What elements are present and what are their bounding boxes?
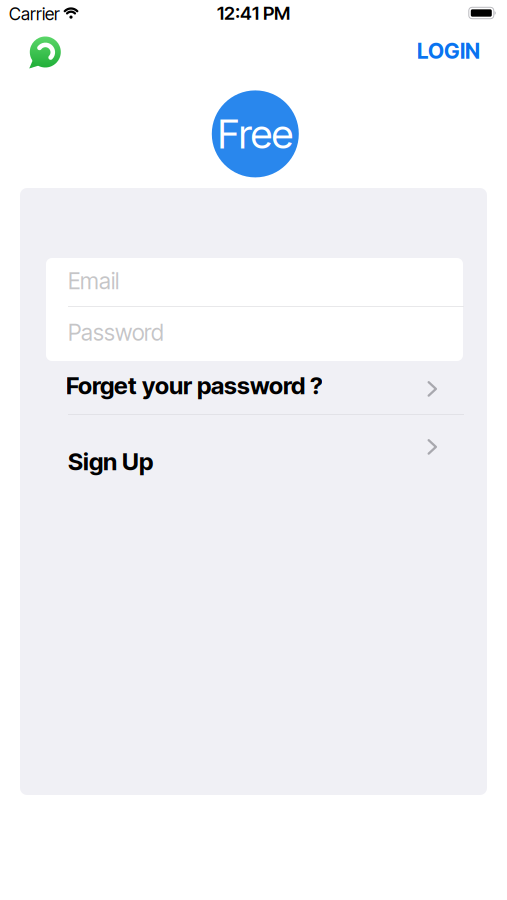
button[interactable]: Email xyxy=(68,257,464,305)
button[interactable]: Password xyxy=(68,308,464,357)
staticText: Carrier xyxy=(9,3,60,24)
staticText: Sign Up xyxy=(68,447,153,476)
button[interactable]: WhatsApp xyxy=(26,34,62,70)
button[interactable]: Forget your password ? xyxy=(66,369,437,403)
button[interactable]: Sign Up xyxy=(68,430,437,486)
staticText: Free xyxy=(218,110,293,158)
staticText: Password xyxy=(68,319,164,346)
staticText: Email xyxy=(68,267,119,295)
staticText: Forget your password ? xyxy=(66,371,323,400)
staticText: 12:41 PM xyxy=(217,2,290,24)
staticText: LOGIN xyxy=(417,38,480,64)
button[interactable]: LOGIN xyxy=(417,40,480,62)
